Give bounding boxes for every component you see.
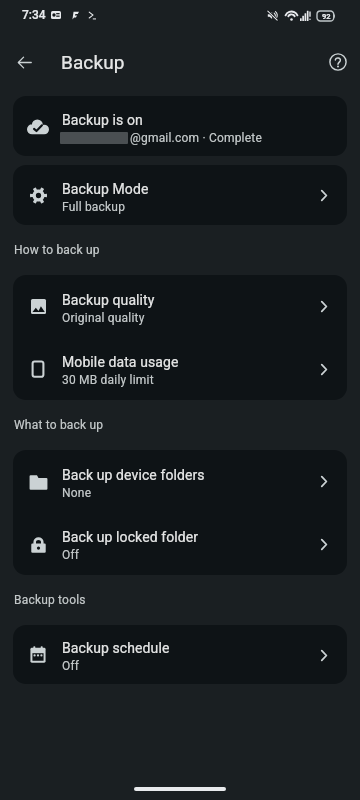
staticText: Off (62, 548, 80, 562)
staticText: Backup schedule (62, 640, 170, 656)
staticText: Backup (61, 51, 125, 73)
button[interactable]: Back up locked folder (13, 512, 347, 575)
button[interactable]: Backup schedule (13, 625, 347, 684)
button[interactable]: Back (2, 40, 46, 84)
staticText: 30 MB daily limit (62, 373, 154, 387)
button[interactable]: Backup Mode (13, 165, 347, 225)
staticText: What to back up (14, 418, 104, 432)
button[interactable]: Help (316, 40, 360, 84)
staticText: None (62, 486, 92, 500)
staticText: Back up device folders (62, 467, 205, 483)
button[interactable]: Back up device folders (13, 450, 347, 512)
staticText: Mobile data usage (62, 354, 179, 370)
button[interactable]: Mobile data usage (13, 337, 347, 400)
staticText: How to back up (14, 243, 100, 257)
staticText: 92 (322, 12, 331, 21)
button[interactable]: Backup quality (13, 275, 347, 337)
staticText: Backup Mode (62, 181, 149, 197)
staticText: @gmail.com · Complete (130, 131, 262, 145)
staticText: Backup is on (62, 112, 143, 128)
staticText: Backup tools (14, 593, 86, 607)
staticText: Back up locked folder (62, 529, 199, 545)
staticText: Original quality (62, 311, 145, 325)
staticText: Full backup (62, 200, 126, 214)
staticText: 7:34 (22, 8, 46, 22)
button[interactable]: Backup is on (13, 96, 347, 156)
staticText: Backup quality (62, 292, 155, 308)
staticText: Off (62, 659, 80, 673)
